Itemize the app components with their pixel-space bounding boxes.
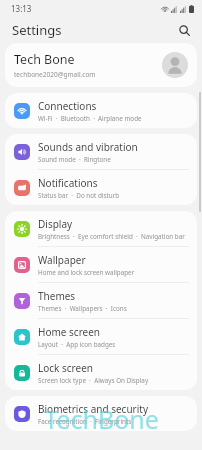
staticText: techbone2020@gmail.com: [14, 70, 96, 79]
staticText: Tech Bone: [14, 51, 75, 68]
button[interactable]: Notifications: [5, 170, 197, 205]
staticText: Face recognition · Fingerprints: [38, 417, 132, 426]
button[interactable]: Wallpaper: [5, 247, 197, 282]
staticText: Themes · Wallpapers · Icons: [38, 304, 127, 313]
staticText: Lock screen: [38, 361, 94, 375]
button[interactable]: Sounds and vibration: [5, 134, 197, 169]
staticText: Themes: [38, 289, 76, 303]
button[interactable]: Display: [5, 211, 197, 246]
staticText: Status bar · Do not disturb: [38, 191, 120, 200]
staticText: TechBone: [44, 402, 159, 436]
staticText: Home screen: [38, 325, 101, 339]
button[interactable]: Biometrics and security: [5, 396, 197, 431]
staticText: Display: [38, 217, 73, 231]
staticText: Wi-Fi · Bluetooth · Airplane mode: [38, 114, 142, 123]
button[interactable]: Themes: [5, 283, 197, 318]
button[interactable]: Connections: [5, 93, 197, 128]
staticText: Brightness · Eye comfort shield · Naviga…: [38, 232, 185, 241]
button[interactable]: Profile: [162, 52, 188, 78]
staticText: Screen lock type · Always On Display: [38, 376, 149, 385]
staticText: Wallpaper: [38, 253, 86, 267]
staticText: Notifications: [38, 176, 98, 190]
button[interactable]: Lock screen: [5, 355, 197, 390]
staticText: Layout · App icon badges: [38, 340, 116, 349]
staticText: Settings: [12, 21, 62, 39]
staticText: Connections: [38, 99, 97, 113]
button[interactable]: Home screen: [5, 319, 197, 354]
staticText: Home and lock screen wallpaper: [38, 268, 135, 277]
staticText: Biometrics and security: [38, 402, 148, 416]
staticText: 13:13: [11, 3, 32, 14]
button[interactable]: Tech Bone: [5, 43, 197, 87]
staticText: Sounds and vibration: [38, 140, 138, 154]
button[interactable]: Search: [174, 20, 194, 40]
staticText: Sound mode · Ringtone: [38, 155, 111, 164]
